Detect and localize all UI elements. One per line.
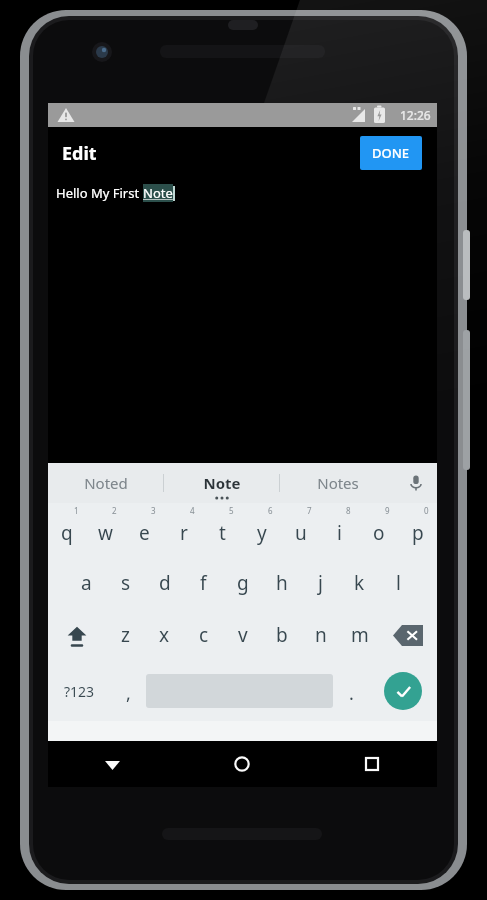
staticText: Noted	[84, 473, 128, 493]
button[interactable]: Shift	[48, 609, 106, 661]
button[interactable]: Note	[164, 463, 279, 503]
staticText: l	[396, 570, 401, 596]
button[interactable]: l	[379, 557, 418, 609]
button[interactable]: 9	[359, 503, 398, 557]
staticText: .	[349, 681, 354, 706]
button[interactable]: s	[106, 557, 145, 609]
staticText: 5	[229, 505, 234, 516]
button[interactable]: k	[340, 557, 379, 609]
button[interactable]: m	[340, 609, 379, 661]
staticText: s	[121, 570, 131, 596]
staticText: c	[199, 622, 209, 648]
staticText: x	[159, 622, 170, 648]
button[interactable]: v	[223, 609, 262, 661]
button[interactable]	[384, 672, 422, 710]
button[interactable]: DONE	[360, 136, 422, 170]
staticText: 6	[268, 505, 273, 516]
staticText: e	[139, 520, 150, 546]
staticText: k	[354, 570, 365, 596]
button[interactable]: ?123	[48, 661, 110, 721]
staticText: DONE	[372, 144, 410, 162]
staticText: 12:26	[400, 107, 431, 123]
button[interactable]: c	[184, 609, 223, 661]
button[interactable]: z	[106, 609, 145, 661]
button[interactable]: n	[301, 609, 340, 661]
button[interactable]: 1	[48, 503, 86, 557]
staticText: 2	[112, 505, 117, 516]
staticText: h	[276, 570, 288, 596]
button[interactable]: b	[262, 609, 301, 661]
staticText: Note	[143, 184, 173, 202]
button[interactable]: Backspace	[379, 609, 437, 661]
button[interactable]: j	[301, 557, 340, 609]
other: Enter	[369, 661, 437, 721]
staticText: d	[159, 570, 171, 596]
button[interactable]: 5	[203, 503, 242, 557]
button[interactable]: .	[333, 661, 369, 721]
staticText: ,	[126, 681, 131, 706]
staticText: m	[351, 622, 369, 648]
button[interactable]: d	[145, 557, 184, 609]
button[interactable]: f	[184, 557, 223, 609]
button[interactable]: 3	[125, 503, 164, 557]
staticText: 1	[74, 505, 79, 516]
staticText: Edit	[62, 141, 97, 166]
staticText: r	[180, 520, 188, 546]
button[interactable]: Recents	[307, 741, 437, 787]
staticText: f	[200, 570, 207, 596]
staticText: p	[412, 520, 424, 546]
staticText: 7	[307, 505, 312, 516]
button[interactable]: a	[67, 557, 106, 609]
staticText: b	[276, 622, 288, 648]
staticText: g	[237, 570, 249, 596]
staticText: n	[315, 622, 327, 648]
button[interactable]: 2	[86, 503, 125, 557]
staticText: 0	[424, 505, 429, 516]
button[interactable]: 8	[320, 503, 359, 557]
staticText: v	[238, 622, 248, 648]
button[interactable]: Home	[177, 741, 307, 787]
staticText: ?123	[64, 682, 95, 701]
button[interactable]: Voice input	[395, 463, 437, 503]
button[interactable]: x	[145, 609, 184, 661]
button[interactable]: 7	[281, 503, 320, 557]
staticText: w	[98, 520, 113, 546]
staticText: 8	[346, 505, 351, 516]
button[interactable]: Noted	[48, 463, 163, 503]
staticText: t	[219, 520, 226, 546]
staticText: Note	[203, 473, 241, 493]
staticText: y	[257, 520, 267, 546]
staticText: u	[295, 520, 307, 546]
button[interactable]: g	[223, 557, 262, 609]
button[interactable]: 6	[242, 503, 281, 557]
staticText: 4	[190, 505, 195, 516]
button[interactable]: Notes	[280, 463, 395, 503]
button[interactable]: h	[262, 557, 301, 609]
button[interactable]: 0	[398, 503, 437, 557]
staticText: Hello My First	[56, 184, 143, 202]
button[interactable]: 4	[164, 503, 203, 557]
staticText: a	[81, 570, 92, 596]
staticText: j	[318, 570, 323, 596]
staticText: Notes	[317, 473, 359, 493]
staticText: z	[121, 622, 130, 648]
button[interactable]: Back	[48, 741, 177, 787]
staticText: 9	[385, 505, 390, 516]
button[interactable]: ,	[110, 661, 146, 721]
staticText: 3	[151, 505, 156, 516]
staticText: i	[337, 520, 342, 546]
staticText: o	[373, 520, 385, 546]
staticText: q	[61, 520, 73, 546]
button[interactable]: Hello My First	[48, 179, 437, 463]
